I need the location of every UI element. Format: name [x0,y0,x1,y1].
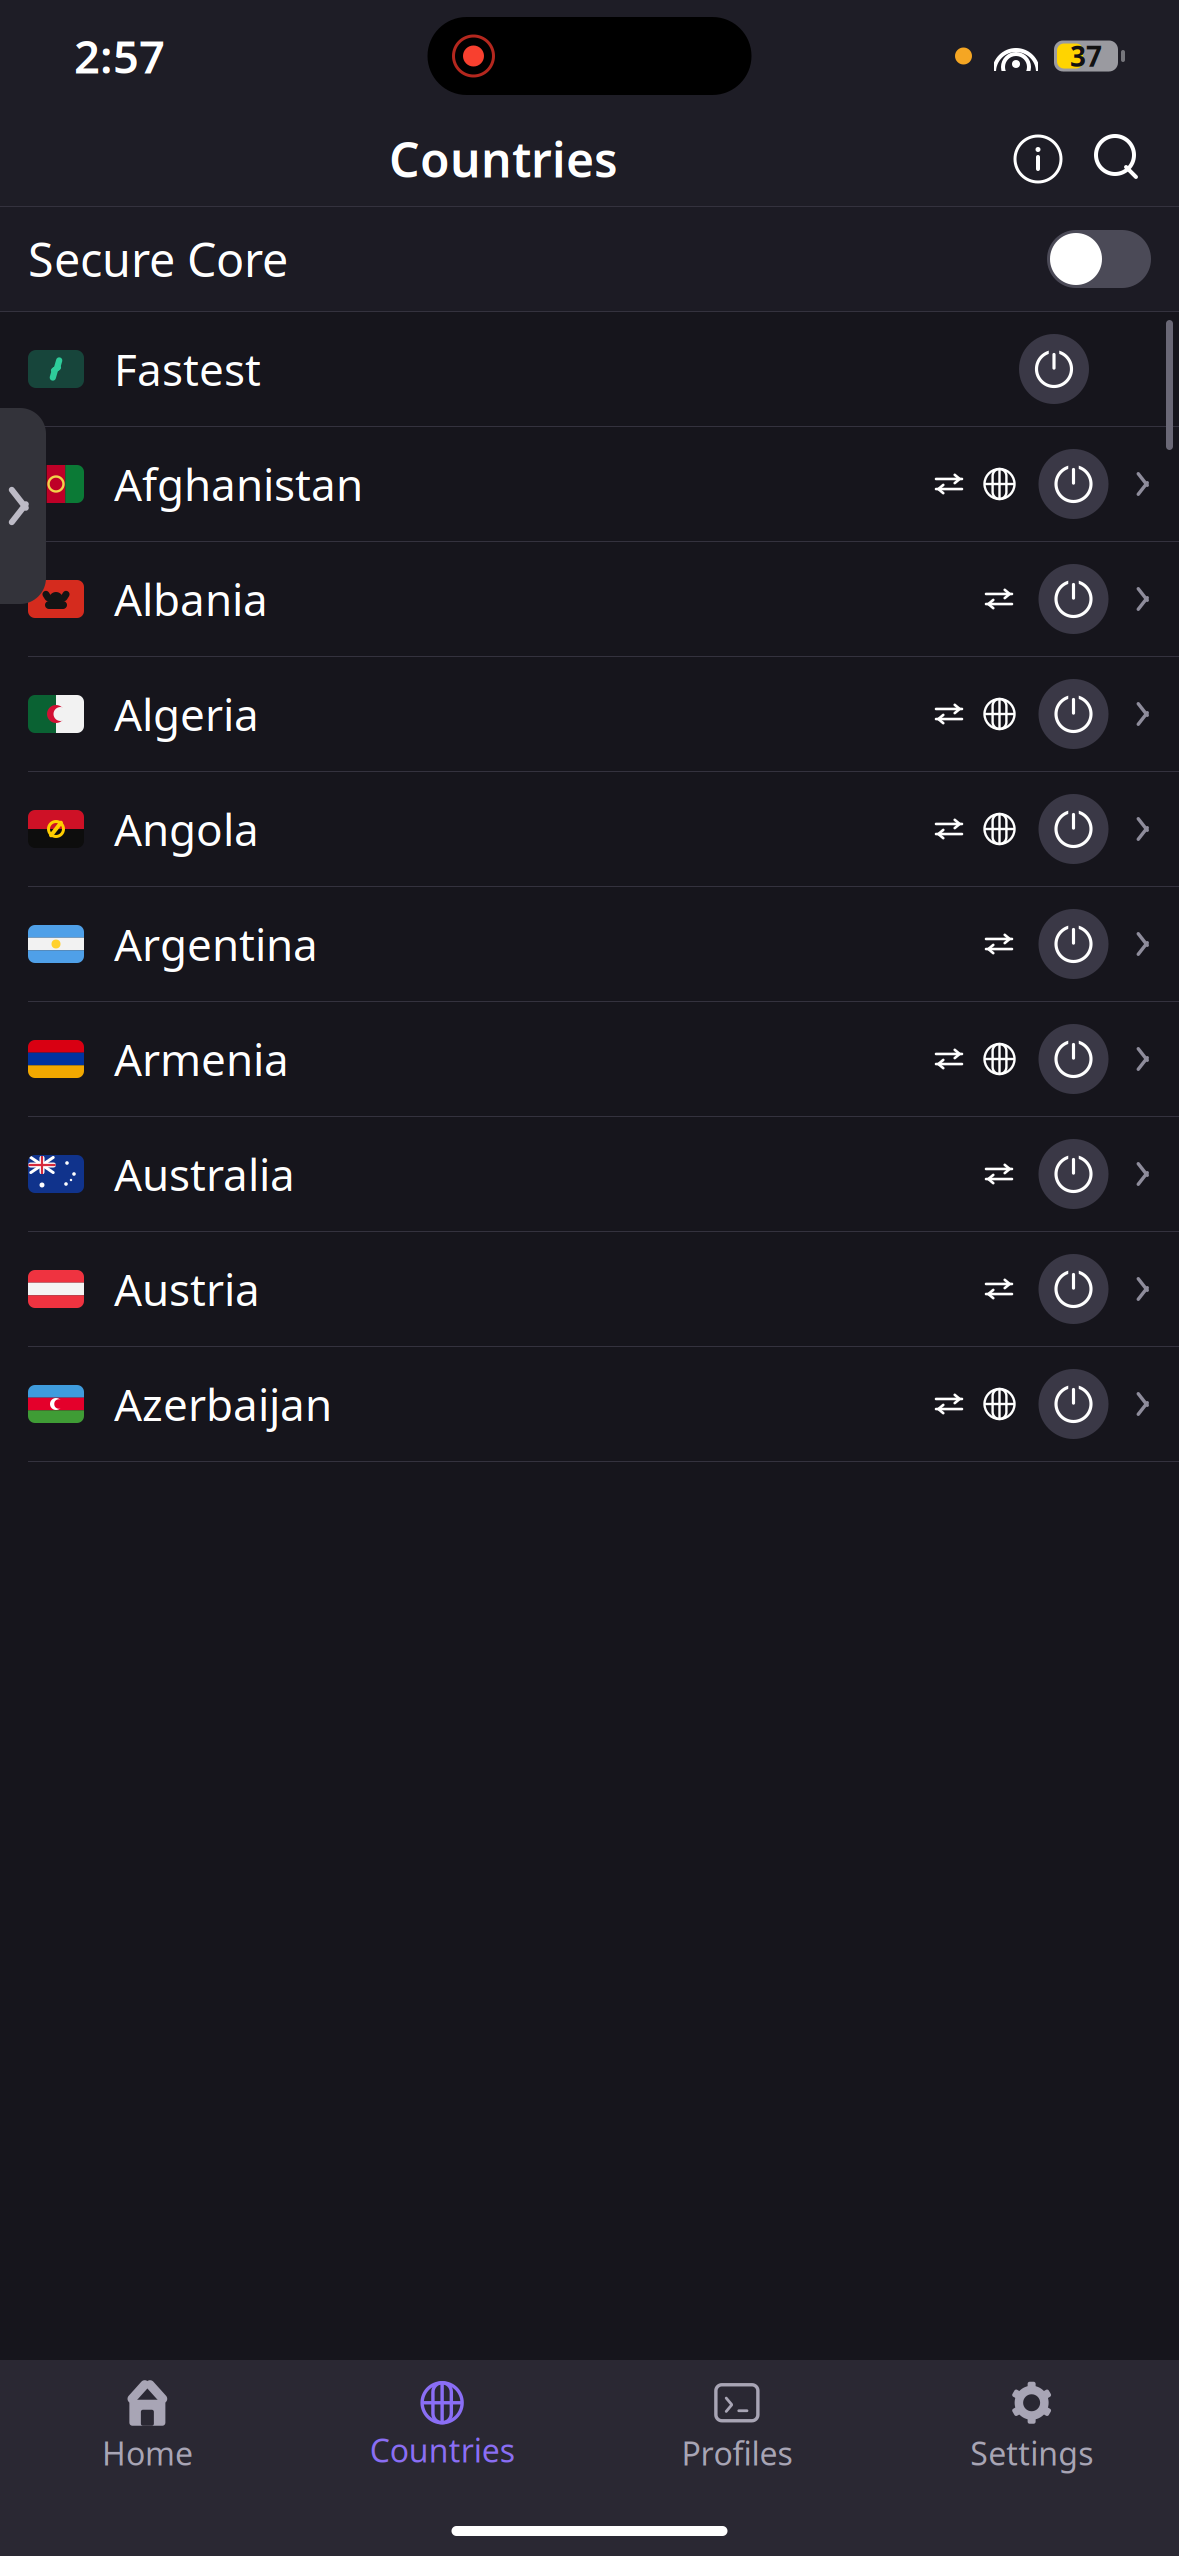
staticText: Albania [114,570,268,628]
button[interactable]: Armenia [0,1002,1179,1117]
button[interactable]: Fastest [0,312,1179,427]
button[interactable]: Search [1087,128,1149,190]
button[interactable]: Azerbaijan [0,1347,1179,1462]
button[interactable]: Connect [1038,1024,1108,1094]
staticText: Secure Core [28,228,288,290]
button[interactable]: Information [1007,128,1069,190]
staticText: Afghanistan [114,455,363,513]
staticText: Settings [970,2432,1093,2474]
staticText: Fastest [114,340,261,398]
staticText: Austria [114,1260,260,1318]
button[interactable]: Profiles [589,2364,884,2482]
staticText: 37 [1070,37,1102,75]
button[interactable]: Austria [0,1232,1179,1347]
button[interactable]: Connect [1019,334,1089,404]
staticText: Azerbaijan [114,1375,332,1433]
staticText: Profiles [681,2432,792,2474]
button[interactable]: Open sidebar [0,408,92,604]
button[interactable]: Connect [1038,909,1108,979]
button[interactable]: Settings [884,2364,1179,2482]
staticText: Countries [370,2429,515,2471]
button[interactable]: Argentina [0,887,1179,1002]
button[interactable]: Algeria [0,657,1179,772]
button[interactable]: Australia [0,1117,1179,1232]
button[interactable]: Connect [1038,564,1108,634]
button[interactable]: Connect [1038,1369,1108,1439]
button[interactable]: Connect [1038,1139,1108,1209]
staticText: Argentina [114,915,318,973]
staticText: 2:57 [74,26,165,86]
button[interactable]: Connect [1038,1254,1108,1324]
button[interactable]: Countries [295,2367,590,2479]
button[interactable]: Connect [1038,794,1108,864]
staticText: Australia [114,1145,295,1203]
staticText: Home [102,2432,193,2474]
staticText: Angola [114,800,259,858]
button[interactable]: Connect [1038,449,1108,519]
button[interactable]: Connect [1038,679,1108,749]
staticText: Algeria [114,685,259,743]
button[interactable]: Afghanistan [0,427,1179,542]
button[interactable]: Secure Core [0,207,1179,311]
button[interactable]: Home [0,2364,295,2482]
staticText: Armenia [114,1030,289,1088]
button[interactable]: Albania [0,542,1179,657]
button[interactable]: Angola [0,772,1179,887]
staticText: Countries [389,127,618,191]
